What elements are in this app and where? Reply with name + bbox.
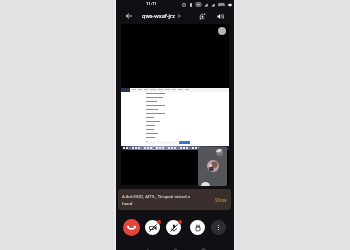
button[interactable]: qws-wxaf-jrz [142,12,181,20]
staticText: 11:11 [146,1,157,7]
staticText: A AnLHOD, AITS., Tirupati raised a hand [122,193,191,206]
staticText: Show [215,197,227,203]
button[interactable]: Back [123,10,135,22]
button[interactable]: End call [123,219,140,236]
button[interactable]: Recent apps [199,246,208,250]
button[interactable]: A AnLHOD, AITS., Tirupati raised a hand [118,189,231,210]
button[interactable]: Home [171,246,180,250]
button[interactable]: Switch camera [196,10,208,22]
button[interactable]: Raise hand [190,220,205,235]
staticText: 40% [218,2,225,7]
button[interactable]: Turn off camera [145,220,160,235]
button[interactable]: More options [211,220,226,235]
button[interactable]: Self view [198,147,227,186]
staticText: qws-wxaf-jrz [142,12,175,20]
button[interactable]: Back [142,246,151,250]
button[interactable]: Speaker [214,10,226,22]
button[interactable]: Unmute microphone [166,220,181,235]
